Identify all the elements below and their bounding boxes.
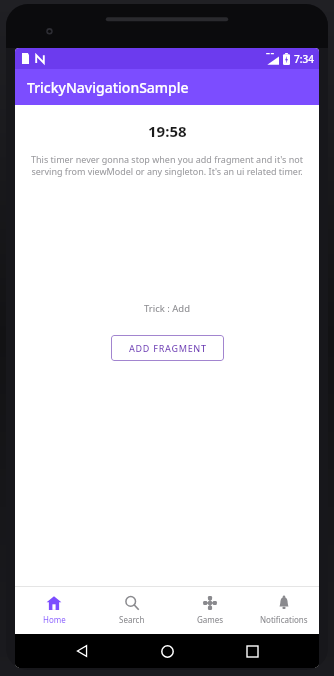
staticText: Games — [197, 614, 224, 625]
button[interactable]: Home — [15, 590, 93, 630]
staticText: Home — [43, 614, 66, 625]
button[interactable]: Home — [149, 634, 185, 668]
staticText: 7:34 — [294, 52, 314, 66]
button[interactable]: Recent apps — [234, 634, 270, 668]
button[interactable]: Back — [64, 634, 100, 668]
staticText: Notifications — [260, 614, 308, 625]
button[interactable]: Notifications — [249, 590, 319, 630]
staticText: Search — [119, 614, 145, 625]
staticText: ADD FRAGMENT — [129, 342, 207, 354]
staticText: 19:58 — [148, 121, 187, 141]
button[interactable]: ADD FRAGMENT — [111, 335, 224, 361]
staticText: TrickyNavigationSample — [27, 78, 189, 97]
button[interactable]: Games — [171, 590, 249, 630]
staticText: Trick : Add — [144, 302, 191, 315]
staticText: This timer never gonna stop when you add… — [29, 153, 305, 178]
button[interactable]: Search — [93, 590, 171, 630]
